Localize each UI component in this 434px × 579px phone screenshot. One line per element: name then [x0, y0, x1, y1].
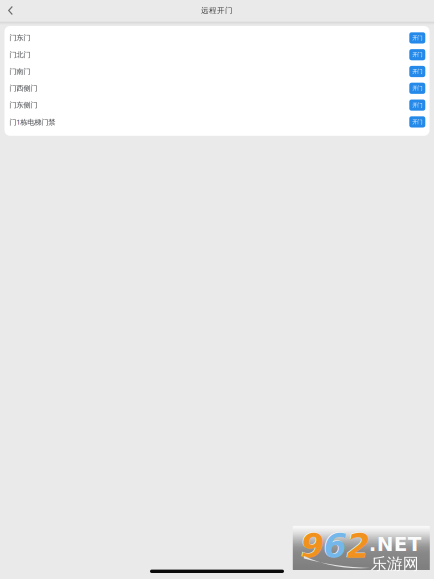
- staticText: 开门: [412, 34, 422, 41]
- staticText: 开门: [412, 51, 422, 58]
- staticText: .NET: [369, 532, 422, 556]
- staticText: 远程开门: [201, 6, 233, 15]
- staticText: 开门: [412, 85, 422, 92]
- staticText: 门东侧门: [9, 100, 37, 110]
- button[interactable]: 开门: [409, 83, 425, 94]
- button[interactable]: 开门: [409, 116, 425, 127]
- button[interactable]: 开门: [409, 32, 425, 43]
- staticText: 门南门: [9, 67, 30, 76]
- staticText: 962: [300, 526, 369, 565]
- staticText: 6: [324, 527, 347, 566]
- button[interactable]: 开门: [409, 49, 425, 60]
- staticText: 乐游网: [371, 554, 419, 574]
- button[interactable]: 开门: [409, 99, 425, 111]
- staticText: 门西侧门: [9, 84, 37, 93]
- staticText: 开门: [412, 118, 422, 125]
- staticText: 门东门: [9, 33, 30, 42]
- staticText: 门1栋电梯门禁: [9, 117, 55, 127]
- staticText: 门北门: [9, 50, 30, 59]
- staticText: 开门: [412, 102, 422, 109]
- button[interactable]: Back: [0, 0, 21, 21]
- button[interactable]: 开门: [409, 66, 425, 77]
- staticText: 9: [301, 527, 324, 566]
- staticText: 2: [347, 527, 370, 566]
- staticText: 开门: [412, 68, 422, 75]
